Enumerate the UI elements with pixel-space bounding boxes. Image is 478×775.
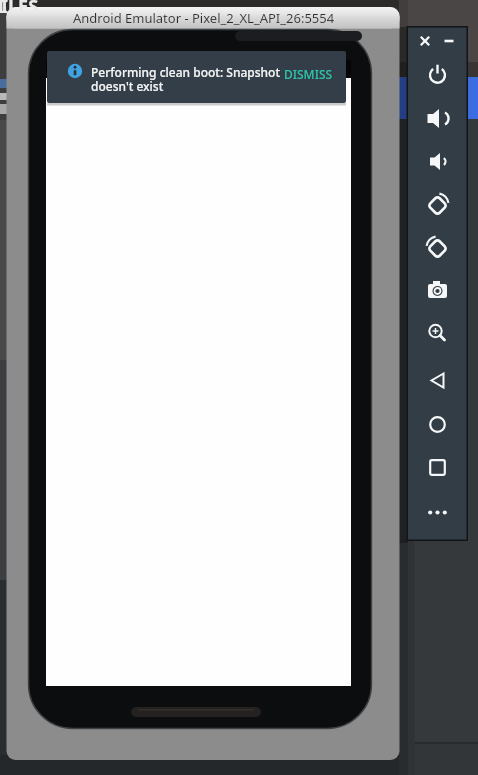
button[interactable] xyxy=(420,187,455,222)
button[interactable] xyxy=(420,230,455,265)
button[interactable] xyxy=(420,101,455,136)
button[interactable] xyxy=(441,33,457,49)
staticText: Performing clean boot: Snapshot doesn't … xyxy=(91,64,280,94)
staticText: ILES xyxy=(1,0,39,19)
button[interactable] xyxy=(420,273,455,308)
button[interactable] xyxy=(420,450,455,485)
button[interactable]: DISMISS xyxy=(279,60,337,88)
button[interactable] xyxy=(420,144,455,179)
button[interactable] xyxy=(420,495,455,530)
button[interactable] xyxy=(420,363,455,398)
staticText: Android Emulator - Pixel_2_XL_API_26:555… xyxy=(73,9,335,27)
staticText: DISMISS xyxy=(284,66,333,82)
button[interactable] xyxy=(417,33,433,49)
button[interactable] xyxy=(420,407,455,442)
button[interactable] xyxy=(420,57,455,92)
button[interactable] xyxy=(420,316,455,351)
